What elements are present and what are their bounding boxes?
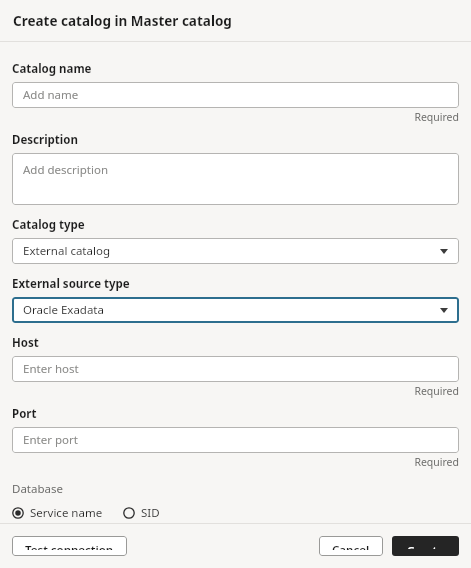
button[interactable]: External source type — [12, 297, 459, 323]
staticText: Create — [407, 543, 444, 549]
staticText: Enter host — [23, 361, 79, 377]
button[interactable]: Description — [12, 153, 459, 205]
staticText: Port — [12, 406, 37, 422]
staticText: Add description — [23, 162, 109, 178]
staticText: Database — [12, 481, 63, 497]
staticText: Catalog type — [12, 217, 85, 233]
staticText: Add name — [23, 87, 79, 103]
staticText: Catalog name — [12, 61, 92, 77]
staticText: SID — [141, 505, 160, 521]
staticText: Oracle Exadata — [23, 302, 104, 318]
staticText: Required — [414, 384, 459, 398]
button[interactable]: Test connection — [12, 536, 127, 556]
button[interactable]: Catalog name — [12, 82, 459, 108]
staticText: Required — [414, 455, 459, 469]
staticText: Test connection — [25, 542, 114, 550]
button[interactable]: SID — [123, 503, 160, 523]
staticText: Create catalog in Master catalog — [13, 12, 232, 30]
staticText: Enter port — [23, 432, 78, 448]
button[interactable]: Service name — [12, 503, 103, 523]
staticText: External source type — [12, 276, 130, 292]
staticText: External catalog — [23, 243, 110, 259]
button[interactable]: Cancel — [319, 536, 383, 556]
button[interactable]: Host — [12, 356, 459, 382]
button[interactable]: Catalog type — [12, 238, 459, 264]
staticText: Service name — [30, 505, 103, 521]
staticText: Description — [12, 132, 78, 148]
button[interactable]: Port — [12, 427, 459, 453]
staticText: Host — [12, 335, 39, 351]
staticText: Cancel — [332, 542, 370, 550]
button[interactable]: Create — [392, 536, 459, 556]
staticText: Required — [414, 110, 459, 124]
